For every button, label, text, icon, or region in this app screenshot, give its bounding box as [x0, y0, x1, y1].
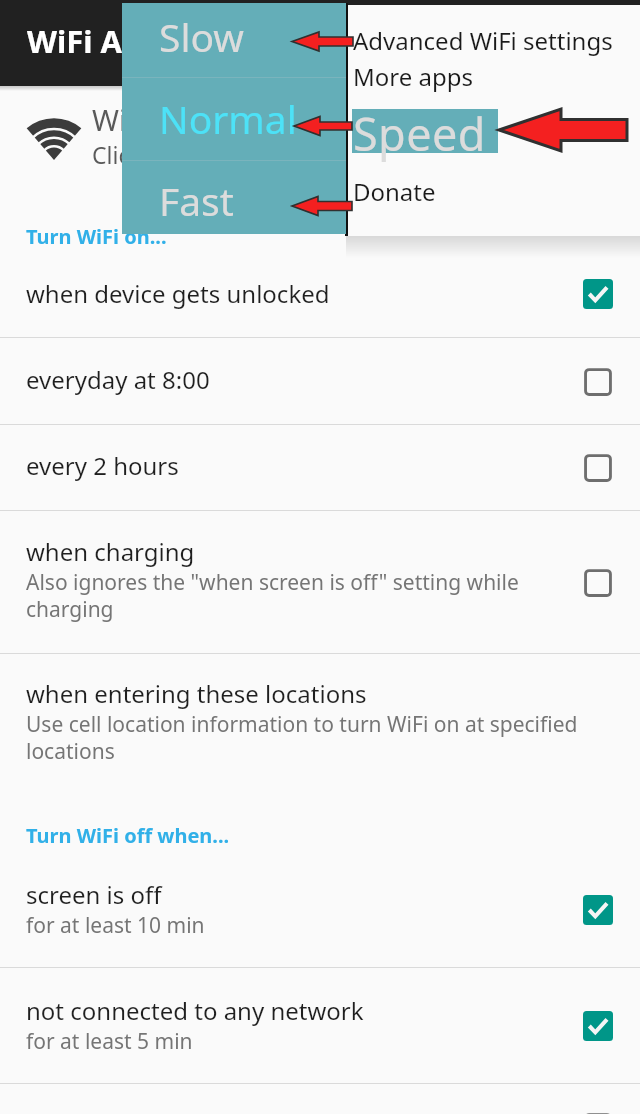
button[interactable]: screen is off — [0, 880, 640, 968]
staticText: not connected to any network — [26, 994, 364, 1027]
staticText: when device gets unlocked — [26, 277, 330, 310]
button[interactable]: when entering these locations — [0, 654, 640, 804]
button[interactable]: not connected to any network — [573, 1001, 623, 1051]
staticText: More apps — [353, 60, 473, 93]
button[interactable]: not connected to any network — [0, 968, 640, 1084]
staticText: every 2 hours — [26, 449, 179, 482]
button[interactable]: when charging — [573, 558, 623, 608]
button[interactable]: screen is off — [573, 885, 623, 935]
staticText: for at least 5 min — [26, 1027, 193, 1056]
button[interactable]: More apps — [353, 60, 640, 96]
staticText: Turn WiFi off when... — [26, 822, 230, 849]
staticText: Click to turn off — [92, 139, 258, 170]
staticText: Also ignores the "when screen is off" se… — [26, 568, 566, 623]
button[interactable]: Slow — [122, 3, 346, 77]
staticText: Normal — [159, 92, 297, 145]
staticText: screen is off — [26, 878, 162, 911]
button[interactable]: every 2 hours — [0, 425, 640, 511]
button[interactable]: everyday at 8:00 — [573, 357, 623, 407]
button[interactable]: when device gets unlocked — [573, 269, 623, 319]
staticText: everyday at 8:00 — [26, 363, 210, 396]
staticText: when charging — [26, 535, 195, 568]
staticText: WiFi is on — [92, 100, 221, 139]
button[interactable]: everyday at 8:00 — [0, 338, 640, 425]
staticText: for at least 10 min — [26, 911, 205, 940]
button[interactable]: every 2 hours — [573, 443, 623, 493]
staticText: Fast — [159, 174, 234, 227]
button[interactable] — [352, 109, 498, 153]
staticText: WiFi Automatic — [27, 20, 263, 62]
button[interactable]: mobile data is on — [573, 1102, 623, 1114]
staticText: Advanced WiFi settings — [353, 24, 613, 57]
button[interactable]: Advanced WiFi settings — [353, 24, 640, 60]
staticText: Donate — [353, 175, 436, 208]
staticText: when entering these locations — [26, 677, 367, 710]
staticText: Slow — [159, 10, 244, 63]
button[interactable]: when charging — [0, 511, 640, 654]
button[interactable]: WiFi is on — [0, 86, 640, 206]
staticText: Use cell location information to turn Wi… — [26, 710, 606, 765]
button[interactable]: Donate — [353, 175, 640, 211]
button[interactable]: mobile data is on — [0, 1084, 640, 1114]
staticText: Speed — [353, 103, 486, 164]
button[interactable]: Normal — [122, 78, 346, 160]
staticText: Turn WiFi on... — [26, 223, 167, 250]
button[interactable]: Fast — [122, 161, 346, 234]
button[interactable]: when device gets unlocked — [0, 250, 640, 338]
